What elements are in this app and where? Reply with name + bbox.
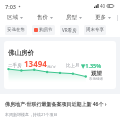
- staticText: 本周新增楼盘，持续21个项目: [5, 112, 58, 117]
- button[interactable]: 佛山房价: [4, 41, 116, 89]
- button[interactable]: 房型: [59, 14, 88, 21]
- staticText: 40: [100, 3, 106, 9]
- staticText: 周末专享: [86, 27, 104, 33]
- staticText: ▼1.35%: [81, 62, 102, 69]
- staticText: 市场情绪: [89, 77, 103, 81]
- staticText: 元/㎡: [47, 64, 57, 69]
- staticText: 房型: [66, 14, 77, 21]
- staticText: VR看房: [62, 27, 77, 33]
- button[interactable]: 更多: [88, 14, 117, 21]
- button[interactable]: 购房节: [32, 25, 55, 35]
- staticText: 7:03: [5, 3, 16, 10]
- button[interactable]: 安选在售: [5, 25, 27, 35]
- staticText: 佛房地产·世联行最新备案项目近期上新 46个 ›: [5, 101, 107, 108]
- button[interactable]: 区域: [0, 14, 30, 21]
- button[interactable]: VR看房: [60, 25, 79, 35]
- staticText: 更多: [95, 14, 106, 21]
- staticText: 售价: [37, 14, 48, 21]
- button[interactable]: 周末专享: [84, 25, 106, 35]
- staticText: 安选在售: [7, 27, 25, 33]
- staticText: 观望: [91, 70, 102, 77]
- staticText: 比上月: [66, 63, 80, 69]
- staticText: 佛山房价: [8, 49, 34, 57]
- staticText: 13494: [24, 58, 47, 69]
- staticText: 二手房: [8, 63, 22, 69]
- staticText: 购房节: [39, 27, 53, 33]
- button[interactable]: 佛房地产·世联行最新备案项目近期上新 46个 ›: [0, 94, 120, 120]
- staticText: 区域: [7, 14, 18, 21]
- button[interactable]: 售价: [30, 14, 59, 21]
